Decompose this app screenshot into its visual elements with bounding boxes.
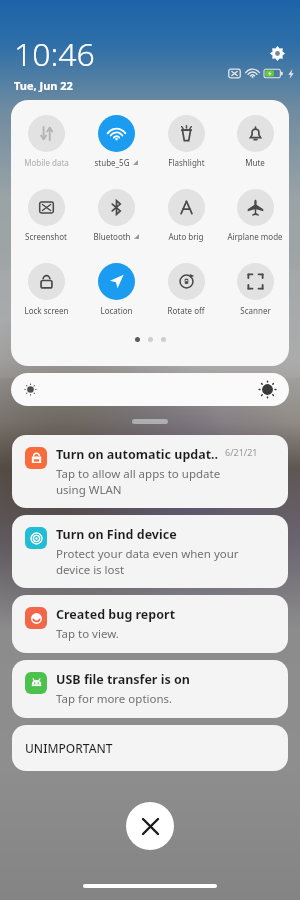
- staticText: Location: [100, 305, 133, 316]
- staticText: Tap to allow all apps to update using WL…: [56, 466, 221, 497]
- button[interactable]: Location: [81, 261, 151, 318]
- button[interactable]: Mute: [221, 113, 289, 170]
- staticText: 10:46: [14, 32, 95, 76]
- button[interactable]: UNIMPORTANT: [12, 725, 288, 771]
- button[interactable]: Screenshot: [11, 187, 81, 244]
- staticText: Tap for more options.: [56, 691, 173, 707]
- staticText: Tue, Jun 22: [14, 78, 73, 92]
- staticText: 6/21/21: [225, 446, 258, 458]
- staticText: Mobile data: [24, 157, 69, 168]
- button[interactable]: Flashlight: [151, 113, 221, 170]
- button[interactable]: Brightness: [11, 373, 289, 406]
- staticText: Turn on Find device: [56, 526, 177, 543]
- button[interactable]: Lock screen: [11, 261, 81, 318]
- staticText: Airplane mode: [227, 231, 283, 242]
- staticText: UNIMPORTANT: [25, 740, 113, 756]
- button[interactable]: USB file transfer is on: [12, 660, 288, 718]
- staticText: stube_5G: [94, 157, 130, 168]
- button[interactable]: Clear all notifications: [126, 802, 174, 850]
- button[interactable]: Scanner: [221, 261, 289, 318]
- button[interactable]: Rotate off: [151, 261, 221, 318]
- staticText: Rotate off: [167, 305, 205, 316]
- button[interactable]: Settings: [264, 40, 290, 66]
- staticText: Created bug report: [56, 606, 176, 623]
- staticText: Auto brig: [168, 231, 204, 242]
- staticText: Tap to view.: [56, 626, 119, 642]
- button[interactable]: Turn on Find device: [12, 515, 288, 588]
- staticText: Screenshot: [25, 231, 67, 242]
- staticText: Protect your data even when your device …: [56, 546, 239, 577]
- staticText: Turn on automatic updat..: [56, 446, 219, 463]
- staticText: Lock screen: [24, 305, 69, 316]
- button[interactable]: Auto brig: [151, 187, 221, 244]
- button[interactable]: stube_5G: [81, 113, 151, 170]
- button[interactable]: Airplane mode: [221, 187, 289, 244]
- staticText: Bluetooth: [93, 231, 131, 242]
- staticText: Scanner: [240, 305, 271, 316]
- button[interactable]: Turn on automatic updat..: [12, 435, 288, 508]
- button[interactable]: Mobile data: [11, 113, 81, 170]
- button[interactable]: Created bug report: [12, 595, 288, 653]
- button[interactable]: Bluetooth: [81, 187, 151, 244]
- staticText: Mute: [245, 157, 265, 168]
- staticText: USB file transfer is on: [56, 671, 190, 688]
- staticText: Flashlight: [168, 157, 205, 168]
